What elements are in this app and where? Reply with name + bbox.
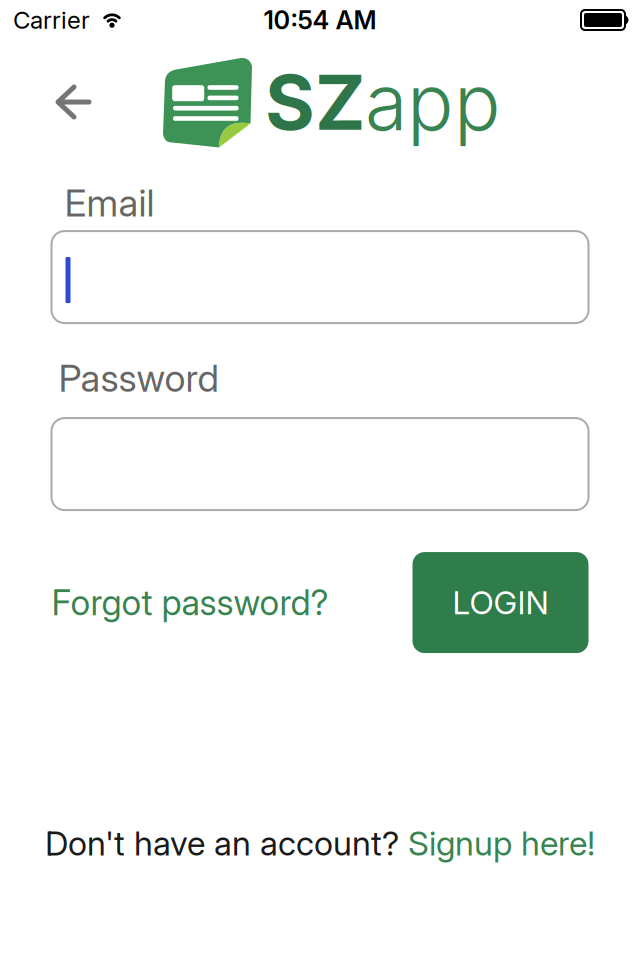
staticText: Signup here! [408,824,595,863]
button[interactable]: Password [51,418,588,510]
button[interactable]: Signup here! [408,824,595,863]
staticText: app [365,56,501,148]
button[interactable]: Email [51,231,588,323]
staticText: Forgot password? [51,582,328,623]
staticText: Carrier [13,6,90,34]
staticText: Don't have an account? [45,824,399,863]
button[interactable]: Back [37,69,109,135]
staticText: LOGIN [452,584,548,621]
staticText: Password [58,356,218,400]
button[interactable]: Forgot password? [51,582,328,623]
staticText: SZ [265,57,365,147]
staticText: Email [64,181,154,225]
button[interactable]: LOGIN [412,552,588,653]
staticText: 10:54 AM [263,5,376,35]
